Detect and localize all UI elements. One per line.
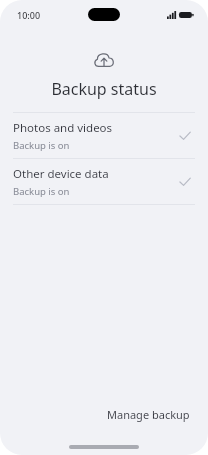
staticText: Backup status [0,78,208,100]
staticText: Backup is on [13,185,70,198]
staticText: 10:00 [17,9,41,21]
button[interactable]: Manage backup [101,402,196,427]
other: Backup enabled [175,126,195,146]
other: Cloud backup [93,51,115,69]
staticText: Backup is on [13,139,70,152]
other: Backup enabled [175,172,195,192]
staticText: Manage backup [107,407,190,422]
button[interactable]: Photos and videos [0,113,208,158]
staticText: Other device data [13,166,109,182]
button[interactable]: Other device data [0,159,208,204]
staticText: Photos and videos [13,120,113,136]
